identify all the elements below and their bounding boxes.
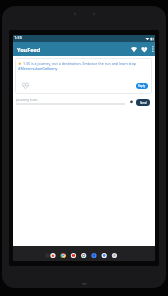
staticText: #MenemukanGallanny — [18, 66, 58, 71]
button[interactable]: ★ — [15, 58, 152, 94]
button[interactable]: Reply — [136, 83, 148, 89]
staticText: ★ — [18, 61, 22, 66]
staticText: YouFeed — [17, 46, 41, 53]
staticText: 1:35 — [14, 35, 22, 40]
staticText: Send — [140, 101, 147, 105]
button[interactable] — [13, 246, 155, 261]
button[interactable]: Send — [136, 99, 150, 106]
staticText: Reply — [138, 84, 146, 88]
staticText: 1:35 is a journey, not a destination. Em… — [22, 61, 152, 66]
staticText: journey turn — [16, 97, 38, 102]
button[interactable]: YouFeed — [13, 42, 155, 56]
